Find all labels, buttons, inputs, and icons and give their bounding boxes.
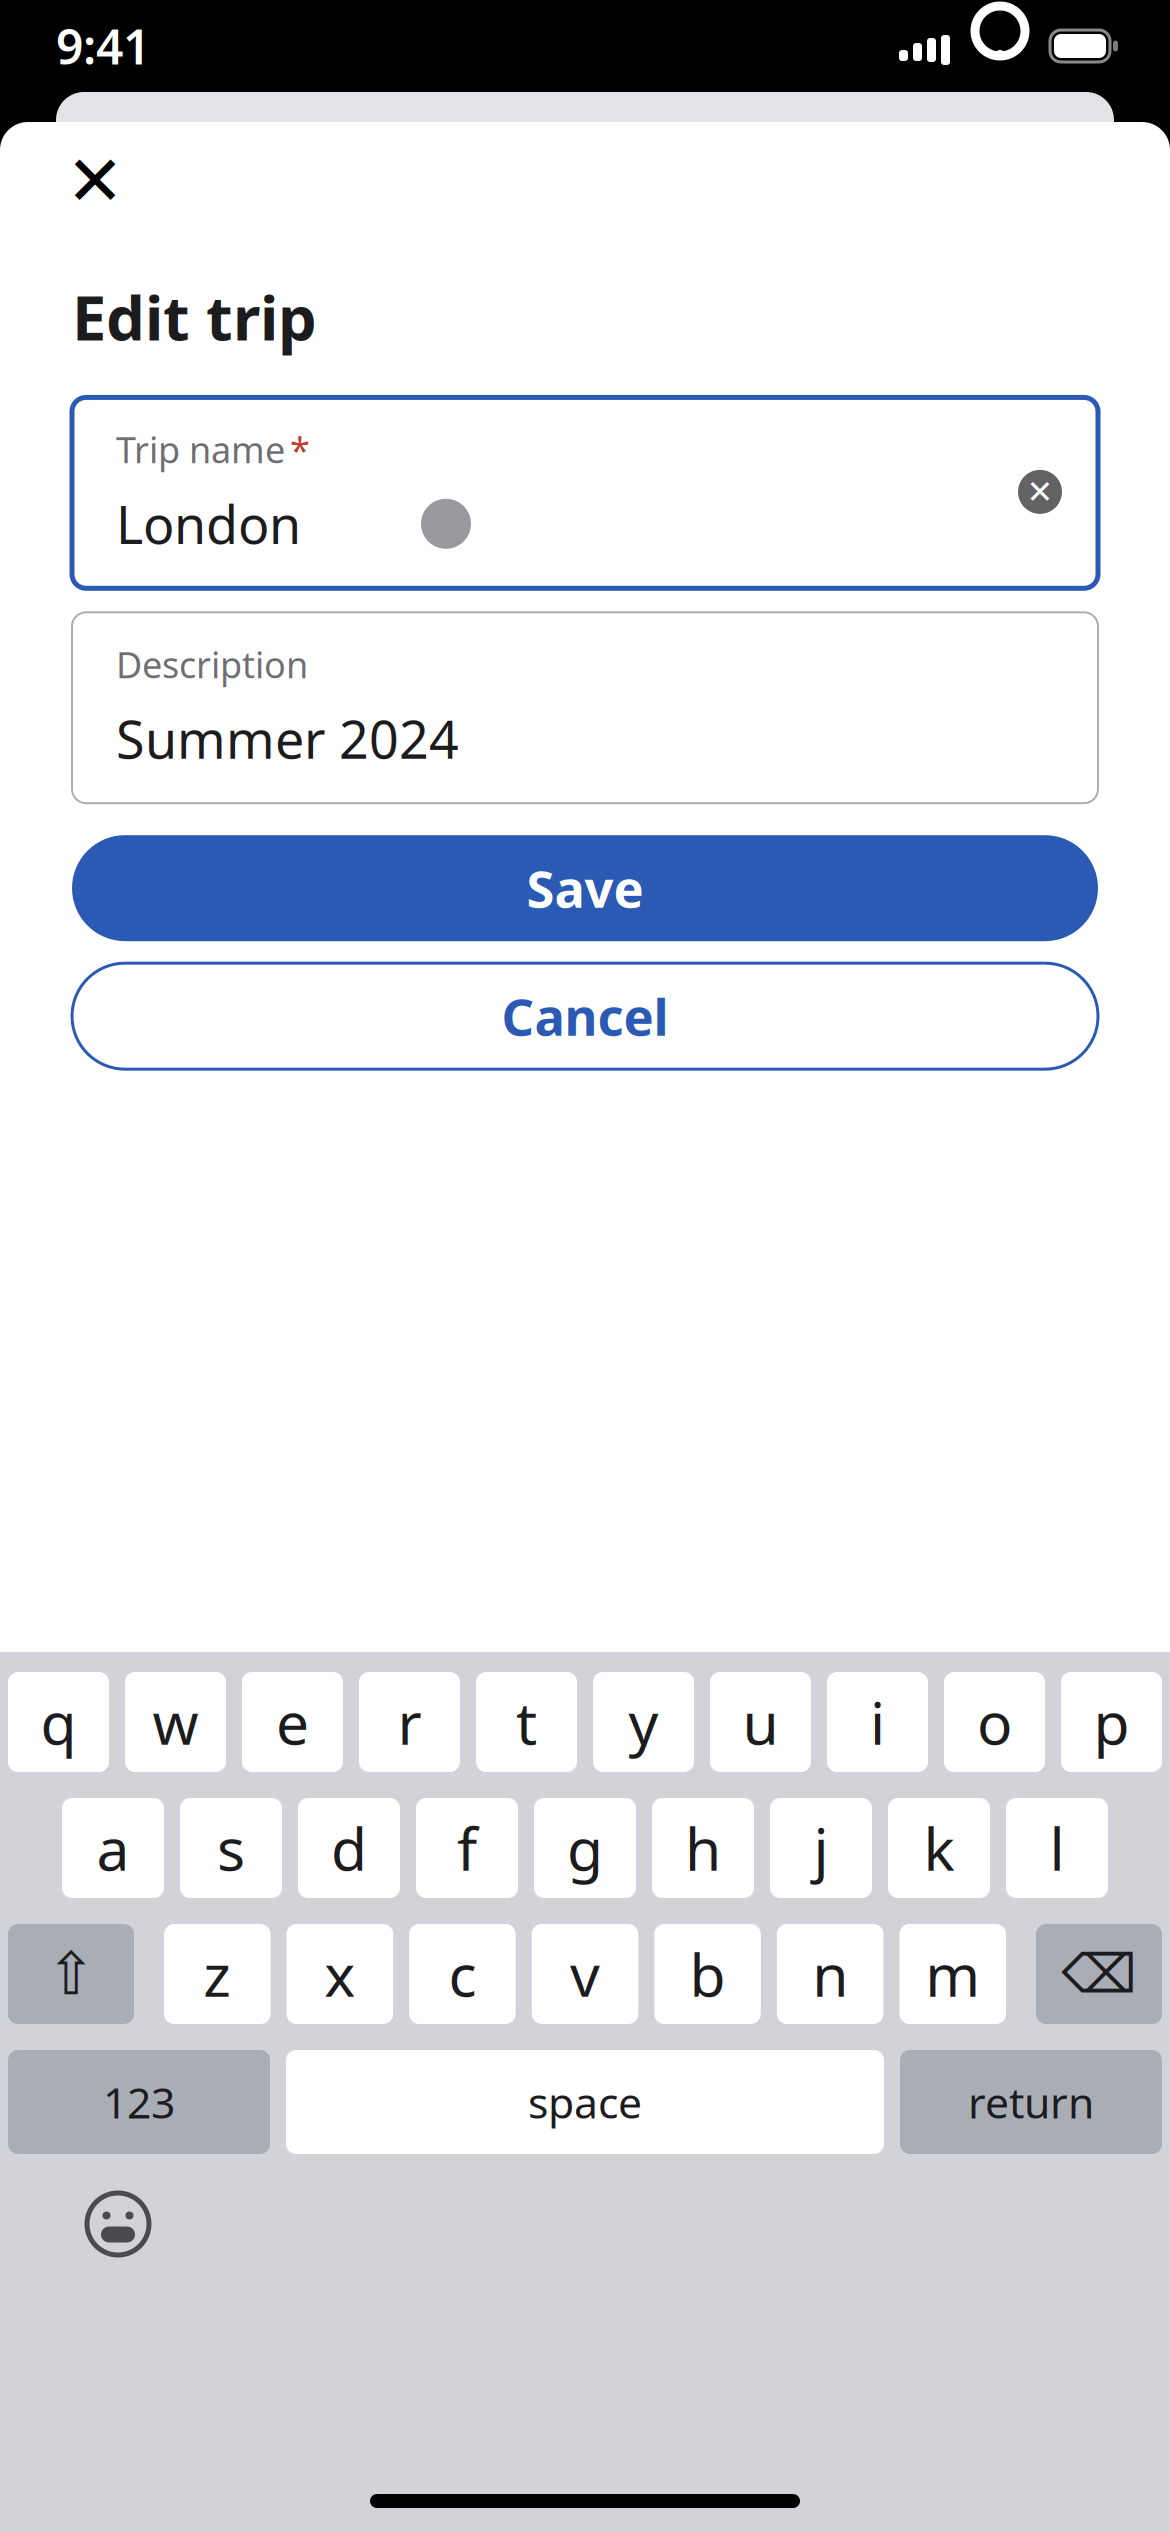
button[interactable]: v: [532, 1924, 638, 2024]
staticText: ✕: [66, 142, 124, 220]
staticText: London: [116, 489, 301, 558]
button[interactable]: s: [180, 1798, 282, 1898]
staticText: f: [457, 1809, 477, 1887]
staticText: d: [331, 1809, 367, 1887]
staticText: i: [870, 1683, 885, 1761]
button[interactable]: d: [298, 1798, 400, 1898]
staticText: *: [290, 425, 310, 473]
staticText: return: [968, 2074, 1094, 2130]
staticText: ✕: [1026, 474, 1053, 510]
staticText: space: [528, 2074, 642, 2130]
staticText: Cancel: [501, 982, 668, 1050]
button[interactable]: g: [534, 1798, 636, 1898]
button[interactable]: o: [944, 1672, 1045, 1772]
button[interactable]: b: [654, 1924, 761, 2024]
staticText: p: [1093, 1683, 1129, 1761]
button[interactable]: Save: [72, 835, 1098, 941]
button[interactable]: u: [710, 1672, 811, 1772]
button[interactable]: Trip name: [72, 397, 1098, 588]
button[interactable]: k: [888, 1798, 990, 1898]
staticText: k: [923, 1809, 954, 1887]
staticText: u: [742, 1683, 778, 1761]
staticText: e: [276, 1683, 309, 1761]
staticText: ⌫: [1061, 1944, 1136, 2004]
button[interactable]: q: [8, 1672, 109, 1772]
button[interactable]: t: [476, 1672, 577, 1772]
button[interactable]: Delete: [1036, 1924, 1162, 2024]
staticText: t: [516, 1683, 537, 1761]
staticText: 9:41: [56, 14, 150, 78]
button[interactable]: c: [409, 1924, 516, 2024]
button[interactable]: h: [652, 1798, 754, 1898]
staticText: m: [925, 1935, 980, 2013]
staticText: o: [977, 1683, 1012, 1761]
staticText: y: [628, 1683, 658, 1761]
staticText: n: [812, 1935, 848, 2013]
button[interactable]: space: [286, 2050, 884, 2154]
staticText: Save: [526, 854, 643, 922]
staticText: g: [567, 1809, 603, 1887]
staticText: x: [324, 1935, 355, 2013]
button[interactable]: Close: [56, 142, 134, 220]
button[interactable]: l: [1006, 1798, 1108, 1898]
button[interactable]: e: [242, 1672, 343, 1772]
staticText: j: [813, 1809, 828, 1887]
staticText: Description: [116, 640, 308, 688]
button[interactable]: a: [62, 1798, 164, 1898]
staticText: z: [203, 1935, 231, 2013]
button[interactable]: y: [593, 1672, 694, 1772]
staticText: h: [685, 1809, 721, 1887]
staticText: l: [1049, 1809, 1064, 1887]
button[interactable]: n: [777, 1924, 883, 2024]
staticText: Edit trip: [72, 276, 317, 357]
button[interactable]: i: [827, 1672, 928, 1772]
button[interactable]: z: [164, 1924, 271, 2024]
button[interactable]: Description: [72, 612, 1098, 803]
staticText: s: [217, 1809, 245, 1887]
staticText: w: [152, 1683, 198, 1761]
button[interactable]: m: [899, 1924, 1006, 2024]
button[interactable]: w: [125, 1672, 226, 1772]
button[interactable]: f: [416, 1798, 518, 1898]
button[interactable]: Shift: [8, 1924, 134, 2024]
button[interactable]: 123: [8, 2050, 270, 2154]
staticText: v: [570, 1935, 600, 2013]
staticText: b: [690, 1935, 726, 2013]
staticText: 123: [103, 2074, 175, 2130]
staticText: ⇧: [46, 1941, 95, 2007]
button[interactable]: j: [770, 1798, 872, 1898]
button[interactable]: return: [900, 2050, 1162, 2154]
staticText: q: [40, 1683, 76, 1761]
button[interactable]: Emoji keyboard: [70, 2176, 166, 2272]
staticText: c: [448, 1935, 476, 2013]
button[interactable]: Cancel: [72, 963, 1098, 1069]
staticText: Trip name: [116, 425, 285, 473]
button[interactable]: p: [1061, 1672, 1162, 1772]
button[interactable]: x: [287, 1924, 393, 2024]
button[interactable]: r: [359, 1672, 460, 1772]
staticText: a: [96, 1809, 129, 1887]
staticText: r: [397, 1683, 421, 1761]
staticText: Summer 2024: [116, 704, 459, 773]
